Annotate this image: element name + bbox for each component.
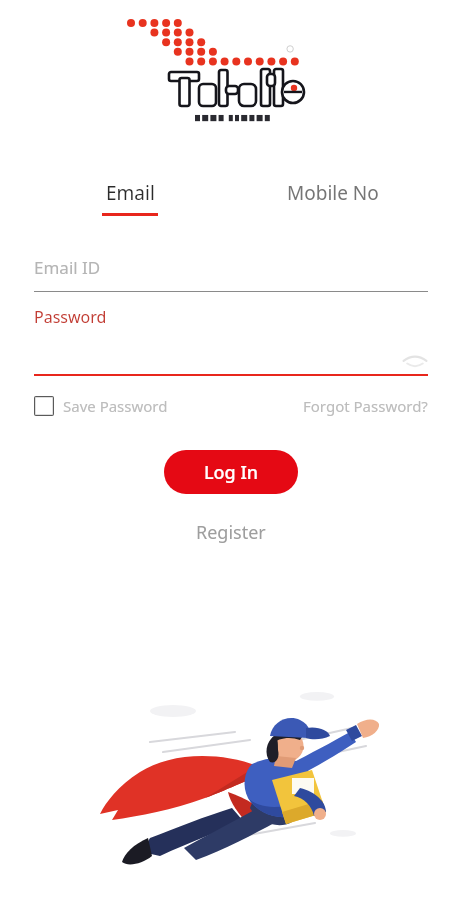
staticText: Password	[34, 306, 107, 328]
staticText: Save Password	[63, 396, 168, 416]
staticText: Email	[106, 180, 155, 206]
button[interactable]: Log In	[164, 450, 298, 494]
button[interactable]: Show password	[402, 352, 428, 368]
button[interactable]: Mobile No	[231, 180, 434, 216]
staticText: Register	[196, 520, 266, 545]
staticText: Mobile No	[287, 180, 379, 206]
button[interactable]: Forgot Password?	[303, 396, 428, 416]
staticText: Log In	[204, 460, 259, 485]
button[interactable]: Register	[180, 516, 282, 549]
button[interactable]: Password	[34, 306, 428, 376]
button[interactable]: Email	[28, 180, 231, 216]
staticText: Email ID	[34, 256, 101, 279]
staticText: Forgot Password?	[303, 396, 428, 416]
button[interactable]: Save Password	[34, 396, 168, 416]
button[interactable]: Email ID	[34, 256, 428, 292]
